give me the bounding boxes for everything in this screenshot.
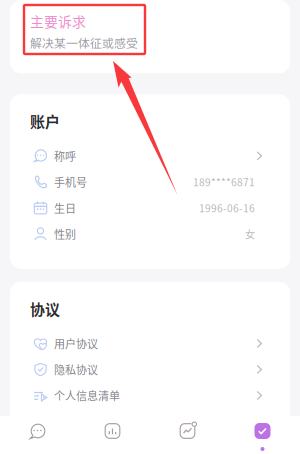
button[interactable]: Messages [0, 416, 75, 454]
staticText: 隐私协议 [54, 361, 98, 377]
button[interactable]: 个人信息清单 [10, 382, 290, 408]
button[interactable]: 生日 [10, 195, 290, 221]
button[interactable]: 称呼 [10, 143, 290, 169]
staticText: 1996-06-16 [199, 200, 255, 215]
staticText: 189****6871 [193, 174, 255, 189]
staticText: 用户协议 [54, 335, 98, 351]
button[interactable]: Profile [225, 416, 300, 454]
staticText: 解决某一体征或感受 [30, 34, 138, 51]
button[interactable]: Trends [150, 416, 225, 454]
staticText: 生日 [54, 200, 76, 216]
button[interactable]: 手机号 [10, 169, 290, 195]
staticText: 称呼 [54, 148, 76, 164]
staticText: 手机号 [54, 174, 87, 190]
button[interactable]: 隐私协议 [10, 356, 290, 382]
staticText: 主要诉求 [30, 11, 86, 31]
staticText: 性别 [54, 226, 76, 242]
button[interactable]: 性别 [10, 221, 290, 247]
staticText: 协议 [30, 298, 60, 319]
staticText: 女 [245, 226, 255, 241]
staticText: 个人信息清单 [54, 387, 120, 403]
button[interactable]: 用户协议 [10, 330, 290, 356]
button[interactable]: Statistics [75, 416, 150, 454]
staticText: 账户 [30, 110, 60, 132]
